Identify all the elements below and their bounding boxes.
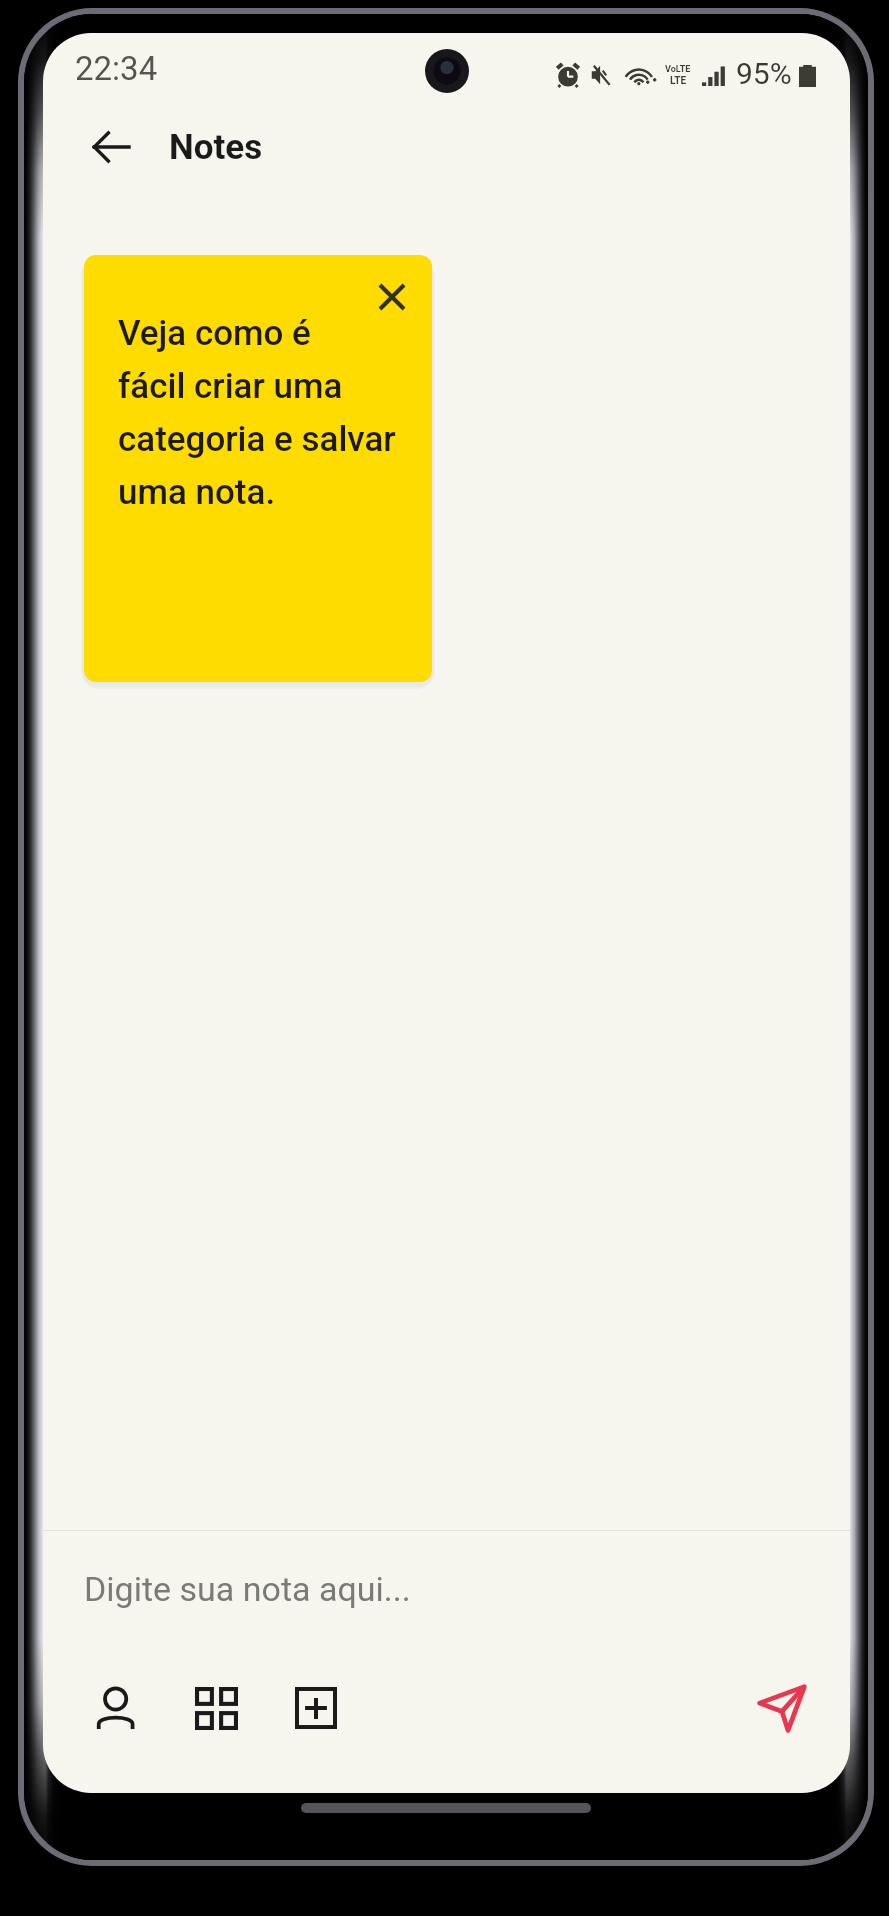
button[interactable]: Close: [369, 274, 415, 320]
staticText: Veja como é fácil criar uma categoria e …: [118, 313, 396, 512]
button[interactable]: Send: [750, 1672, 822, 1744]
staticText: 95%: [736, 56, 792, 91]
staticText: 22:34: [75, 49, 158, 88]
staticText: Notes: [169, 127, 263, 168]
button[interactable]: Categories: [181, 1673, 251, 1743]
button[interactable]: Close: [84, 255, 432, 682]
staticText: Digite sua nota aqui...: [84, 1569, 411, 1609]
staticText: VoLTE: [665, 64, 691, 75]
button[interactable]: Back: [81, 117, 141, 177]
button[interactable]: Profile: [81, 1673, 151, 1743]
button[interactable]: Add: [281, 1673, 351, 1743]
staticText: LTE: [670, 75, 687, 87]
